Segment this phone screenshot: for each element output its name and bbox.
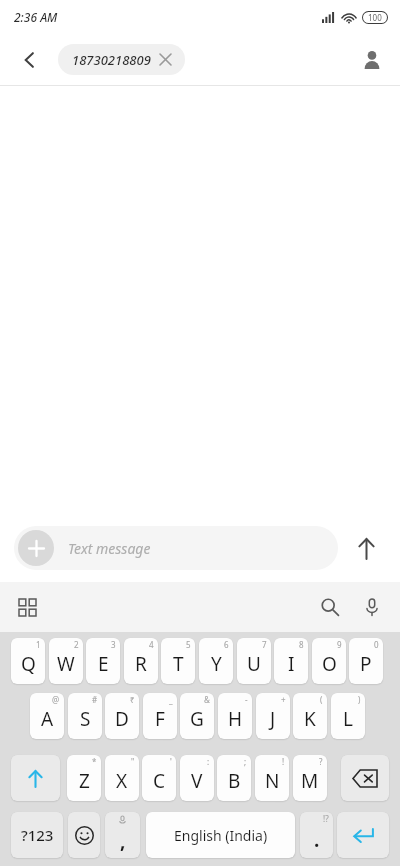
staticText: ;	[244, 756, 247, 767]
button[interactable]: 6	[199, 638, 233, 684]
staticText: &	[204, 694, 210, 705]
button[interactable]: '	[142, 755, 176, 801]
button[interactable]: 7	[237, 638, 271, 684]
staticText: G	[190, 706, 204, 732]
button[interactable]: Voice input	[352, 587, 392, 627]
staticText: H	[228, 706, 243, 732]
staticText: English (India)	[174, 826, 268, 845]
button[interactable]: 18730218809	[58, 44, 185, 75]
button[interactable]: Space	[146, 812, 295, 858]
button[interactable]: 8	[274, 638, 308, 684]
staticText: 100	[368, 12, 382, 23]
staticText: ,	[120, 828, 126, 854]
staticText: W	[57, 651, 75, 677]
staticText: 2:36 AM	[14, 9, 58, 25]
staticText: 2	[74, 639, 79, 650]
staticText: S	[80, 706, 91, 732]
button[interactable]: Period	[300, 812, 333, 858]
button[interactable]: )	[331, 693, 365, 739]
staticText: .	[314, 827, 320, 853]
staticText: A	[41, 706, 54, 732]
staticText: U	[247, 651, 261, 677]
button[interactable]: 4	[124, 638, 158, 684]
staticText: X	[116, 768, 128, 794]
staticText: Y	[211, 651, 222, 677]
button[interactable]: Contact	[352, 40, 392, 80]
button[interactable]: #	[68, 693, 102, 739]
button[interactable]: "	[105, 755, 139, 801]
staticText: 3	[111, 639, 116, 650]
button[interactable]: Send	[346, 528, 386, 568]
staticText: M	[301, 768, 319, 794]
button[interactable]: ?	[293, 755, 327, 801]
staticText: N	[265, 768, 280, 794]
staticText: ?	[319, 756, 323, 767]
staticText: 9	[337, 639, 342, 650]
button[interactable]: Emoji	[68, 812, 100, 858]
staticText: )	[358, 694, 361, 705]
button[interactable]: Shift	[11, 755, 60, 801]
button[interactable]: Backspace	[341, 755, 389, 801]
staticText: K	[304, 706, 316, 732]
staticText: 6	[224, 639, 229, 650]
staticText: 18730218809	[72, 51, 151, 69]
staticText: "	[131, 756, 135, 767]
button[interactable]: Attach	[14, 526, 338, 570]
staticText: Text message	[68, 539, 151, 558]
button[interactable]: 2	[49, 638, 83, 684]
staticText: E	[98, 651, 109, 677]
staticText: B	[228, 768, 241, 794]
staticText: ?123	[21, 825, 54, 845]
button[interactable]: _	[143, 693, 177, 739]
button[interactable]: &	[180, 693, 214, 739]
staticText: Q	[21, 651, 36, 677]
staticText: 1	[36, 639, 41, 650]
button[interactable]: -	[218, 693, 252, 739]
button[interactable]: :	[180, 755, 214, 801]
button[interactable]: Attach	[18, 530, 54, 566]
button[interactable]: *	[67, 755, 101, 801]
staticText: _	[169, 694, 173, 705]
staticText: :	[207, 756, 210, 767]
staticText: *	[92, 756, 97, 767]
staticText: V	[191, 768, 203, 794]
staticText: T	[173, 651, 184, 677]
staticText: -	[245, 694, 248, 705]
button[interactable]: !	[255, 755, 289, 801]
staticText: L	[343, 706, 353, 732]
button[interactable]: Search	[310, 587, 350, 627]
staticText: +	[281, 694, 286, 705]
button[interactable]: Keyboard options	[8, 588, 46, 626]
button[interactable]: Symbols	[11, 812, 63, 858]
staticText: 0	[374, 639, 379, 650]
staticText: ₹	[130, 694, 135, 705]
staticText: '	[170, 756, 172, 767]
button[interactable]: ₹	[105, 693, 139, 739]
button[interactable]: ;	[217, 755, 251, 801]
staticText: 7	[262, 639, 267, 650]
button[interactable]: 3	[86, 638, 120, 684]
staticText: 8	[299, 639, 304, 650]
staticText: C	[153, 768, 166, 794]
staticText: J	[270, 706, 276, 732]
staticText: D	[115, 706, 129, 732]
button[interactable]: 0	[349, 638, 383, 684]
button[interactable]: Comma	[105, 812, 140, 858]
staticText: 4	[149, 639, 154, 650]
button[interactable]: (	[293, 693, 327, 739]
staticText: #	[92, 694, 98, 705]
staticText: !?	[323, 813, 329, 824]
staticText: R	[135, 651, 147, 677]
button[interactable]: Enter	[337, 812, 389, 858]
button[interactable]: Back	[10, 40, 50, 80]
button[interactable]: @	[30, 693, 64, 739]
button[interactable]: +	[256, 693, 290, 739]
staticText: !	[282, 756, 285, 767]
button[interactable]: 9	[312, 638, 346, 684]
staticText: F	[155, 706, 165, 732]
staticText: I	[288, 651, 295, 677]
staticText: (	[320, 694, 323, 705]
button[interactable]: 5	[161, 638, 195, 684]
button[interactable]: 1	[11, 638, 45, 684]
staticText: Z	[79, 768, 90, 794]
